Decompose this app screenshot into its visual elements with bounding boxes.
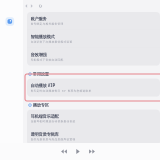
button[interactable]: 智能播放模式: [27, 30, 160, 48]
staticText: 透明音质专辑库: [30, 132, 58, 137]
button[interactable]: Next: [87, 146, 97, 156]
button[interactable]: Forward: [29, 0, 34, 12]
staticText: 连接耳机时播放自动切换最佳音效: [30, 120, 75, 123]
staticText: 音效增强: [30, 52, 46, 57]
staticText: 自动识别下次播放最优模式设置: [30, 40, 72, 43]
button[interactable]: Back: [24, 0, 29, 12]
staticText: 提供无损音质与高品质曲库设置项: [30, 138, 75, 141]
staticText: 播放专区: [33, 102, 49, 108]
button[interactable]: 音效增强: [27, 48, 160, 66]
button[interactable]: Play: [73, 146, 83, 156]
button[interactable]: 账户服务: [27, 12, 160, 30]
button[interactable]: Previous: [59, 146, 69, 156]
staticText: 账户服务: [30, 16, 46, 21]
staticText: 常用设置: [33, 71, 49, 77]
staticText: 每天定时自动播放每日 VIP 推荐为您精选歌单: [30, 89, 91, 93]
staticText: 耳机模式下音效自动匹配: [30, 58, 63, 61]
button[interactable]: 耳机端音乐适配: [27, 110, 160, 127]
staticText: 自动播放 VIP: [30, 83, 55, 88]
staticText: 耳机端音乐适配: [30, 114, 58, 119]
button[interactable]: 自动播放 VIP: [27, 79, 160, 97]
button[interactable]: Reload: [38, 0, 43, 12]
staticText: 智能播放模式: [30, 34, 54, 39]
staticText: 账号绑定与相关服务管理: [30, 22, 63, 25]
button[interactable]: 透明音质专辑库: [27, 128, 160, 145]
button[interactable]: Music app: [3, 17, 20, 26]
